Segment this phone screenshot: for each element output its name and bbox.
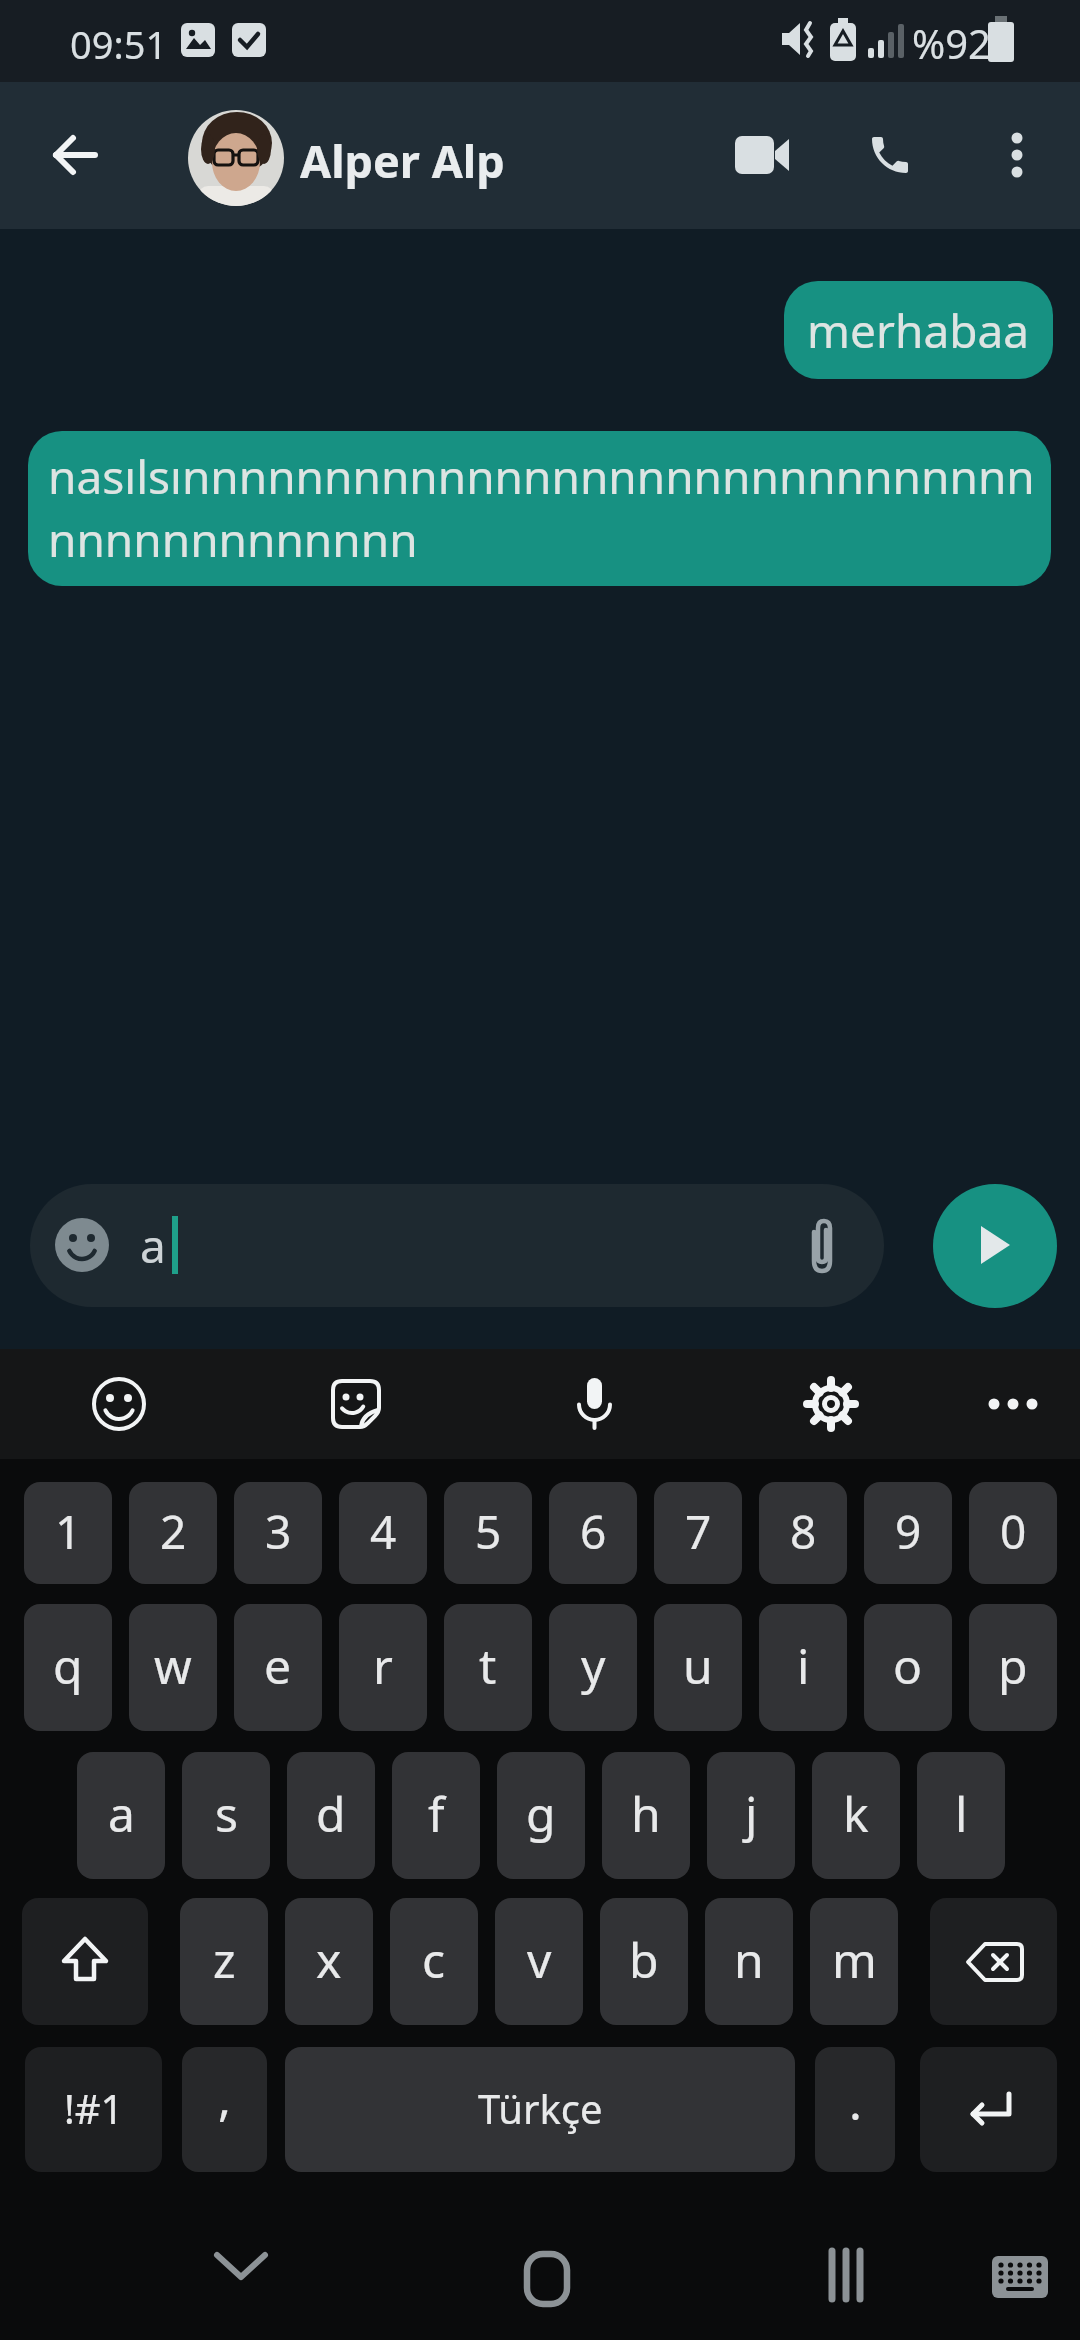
staticText: %92 <box>912 16 991 70</box>
staticText: f <box>428 1781 445 1846</box>
button[interactable]: o <box>864 1604 952 1731</box>
staticText: b <box>629 1927 659 1992</box>
button[interactable]: t <box>444 1604 532 1731</box>
staticText: j <box>745 1781 758 1846</box>
staticText: m <box>832 1927 877 1992</box>
button[interactable]: . <box>815 2047 895 2172</box>
button[interactable]: a <box>30 1184 884 1307</box>
staticText: 09:51 <box>70 18 168 70</box>
button[interactable]: 4 <box>339 1482 427 1584</box>
button[interactable] <box>930 1898 1057 2025</box>
staticText: e <box>264 1633 292 1698</box>
button[interactable]: e <box>234 1604 322 1731</box>
button[interactable] <box>40 120 110 190</box>
button[interactable] <box>855 120 925 190</box>
staticText: i <box>797 1633 810 1698</box>
staticText: 3 <box>265 1500 292 1563</box>
button[interactable]: s <box>182 1752 270 1879</box>
button[interactable]: 1 <box>24 1482 112 1584</box>
button[interactable]: v <box>495 1898 583 2025</box>
button[interactable] <box>515 2247 579 2311</box>
button[interactable]: 8 <box>759 1482 847 1584</box>
staticText: y <box>581 1633 606 1698</box>
staticText: g <box>526 1781 556 1846</box>
button[interactable] <box>963 1354 1063 1454</box>
button[interactable]: x <box>285 1898 373 2025</box>
button[interactable]: Türkçe <box>285 2047 795 2172</box>
button[interactable]: z <box>180 1898 268 2025</box>
staticText: r <box>373 1633 393 1698</box>
staticText: 6 <box>580 1500 607 1563</box>
staticText: u <box>683 1633 713 1698</box>
button[interactable]: u <box>654 1604 742 1731</box>
button[interactable]: 3 <box>234 1482 322 1584</box>
button[interactable]: p <box>969 1604 1057 1731</box>
button[interactable]: g <box>497 1752 585 1879</box>
button[interactable]: n <box>705 1898 793 2025</box>
button[interactable]: 9 <box>864 1482 952 1584</box>
button[interactable]: f <box>392 1752 480 1879</box>
staticText: d <box>316 1781 346 1846</box>
button[interactable] <box>920 2047 1057 2172</box>
button[interactable] <box>985 120 1049 190</box>
staticText: c <box>422 1927 446 1992</box>
staticText: p <box>998 1633 1028 1698</box>
staticText: h <box>631 1781 661 1846</box>
staticText: v <box>527 1927 552 1992</box>
staticText: z <box>213 1927 236 1992</box>
button[interactable]: nasılsınnnnnnnnnnnnnnnnnnnnnnnnnnnnnn <box>28 431 1051 586</box>
staticText: a <box>108 1781 135 1846</box>
button[interactable]: l <box>917 1752 1005 1879</box>
button[interactable]: m <box>810 1898 898 2025</box>
button[interactable] <box>188 110 284 206</box>
button[interactable] <box>728 120 798 190</box>
staticText: 9 <box>895 1500 922 1563</box>
button[interactable]: j <box>707 1752 795 1879</box>
staticText: 8 <box>790 1500 817 1563</box>
button[interactable]: y <box>549 1604 637 1731</box>
button[interactable]: 7 <box>654 1482 742 1584</box>
staticText: 4 <box>370 1500 397 1563</box>
staticText: , <box>218 2065 231 2130</box>
staticText: Türkçe <box>478 2081 603 2135</box>
staticText: 7 <box>685 1500 712 1563</box>
staticText: k <box>843 1781 869 1846</box>
staticText: nnnnnnnnnnnnn <box>48 508 418 571</box>
button[interactable] <box>815 2247 877 2303</box>
button[interactable]: i <box>759 1604 847 1731</box>
staticText: Alper Alp <box>300 130 505 191</box>
staticText: q <box>53 1633 83 1698</box>
button[interactable]: k <box>812 1752 900 1879</box>
button[interactable]: b <box>600 1898 688 2025</box>
button[interactable] <box>306 1354 406 1454</box>
staticText: x <box>316 1927 342 1992</box>
button[interactable] <box>985 2252 1055 2302</box>
button[interactable]: !#1 <box>25 2047 162 2172</box>
button[interactable]: r <box>339 1604 427 1731</box>
button[interactable] <box>933 1184 1057 1308</box>
button[interactable]: q <box>24 1604 112 1731</box>
staticText: w <box>154 1633 192 1698</box>
button[interactable]: 6 <box>549 1482 637 1584</box>
button[interactable]: , <box>182 2047 267 2172</box>
button[interactable]: 0 <box>969 1482 1057 1584</box>
button[interactable]: merhabaa <box>784 281 1053 379</box>
staticText: 5 <box>475 1500 502 1563</box>
staticText: o <box>893 1633 923 1698</box>
staticText: t <box>479 1633 497 1698</box>
button[interactable] <box>781 1354 881 1454</box>
button[interactable]: 2 <box>129 1482 217 1584</box>
button[interactable]: w <box>129 1604 217 1731</box>
button[interactable] <box>205 2242 277 2290</box>
staticText: n <box>734 1927 764 1992</box>
button[interactable]: a <box>77 1752 165 1879</box>
staticText: . <box>849 2069 862 2134</box>
button[interactable]: c <box>390 1898 478 2025</box>
button[interactable]: h <box>602 1752 690 1879</box>
button[interactable] <box>69 1354 169 1454</box>
button[interactable]: 5 <box>444 1482 532 1584</box>
button[interactable] <box>544 1354 644 1454</box>
staticText: s <box>215 1781 238 1846</box>
button[interactable] <box>22 1898 148 2025</box>
button[interactable]: d <box>287 1752 375 1879</box>
